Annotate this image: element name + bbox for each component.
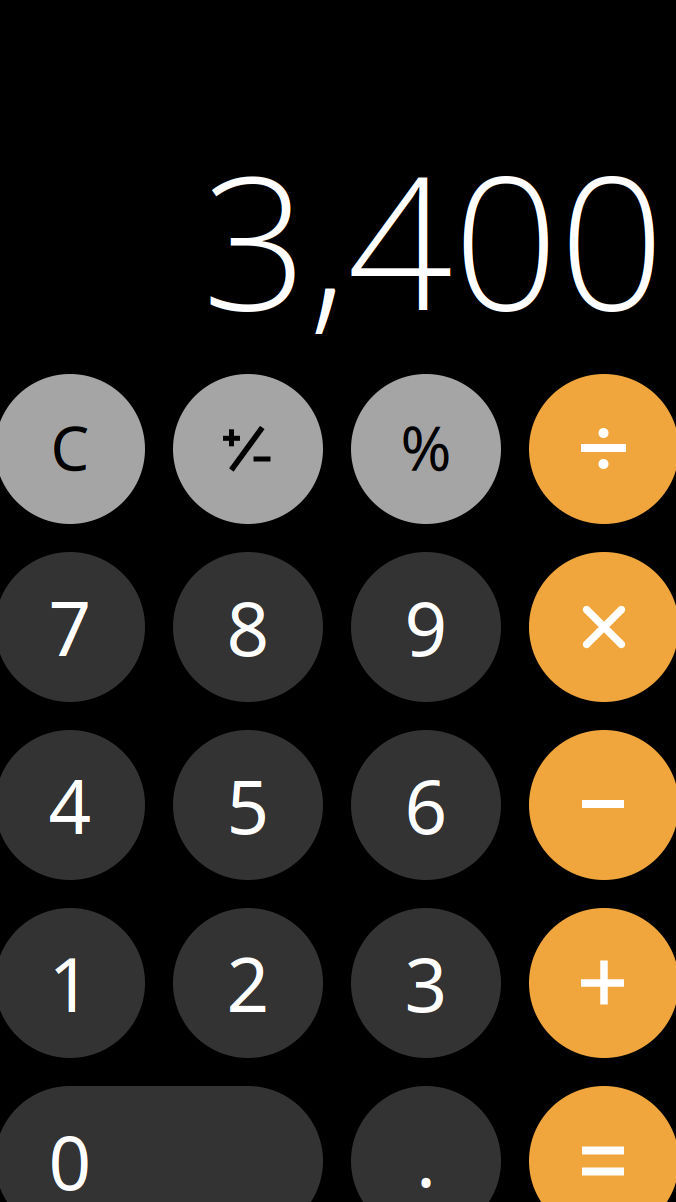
staticText: 3 [404,933,447,1033]
staticText: 1 [48,933,91,1033]
button[interactable]: 5 [173,730,323,880]
button[interactable]: 0 [0,1086,323,1202]
staticText: 6 [404,755,447,855]
staticText: 5 [226,755,269,855]
button[interactable]: 9 [351,552,501,702]
button[interactable]: Equals [529,1086,676,1202]
button[interactable]: % [351,374,501,524]
staticText: 4 [48,755,91,855]
button[interactable]: Divide [529,374,676,524]
staticText: 7 [48,577,91,677]
staticText: C [50,406,89,488]
button[interactable]: 6 [351,730,501,880]
button[interactable]: Subtract [529,730,676,880]
staticText: 3,400 [202,112,665,364]
staticText: % [400,406,451,488]
button[interactable]: 1 [0,908,145,1058]
button[interactable]: 8 [173,552,323,702]
button[interactable]: C [0,374,145,524]
button[interactable]: Toggle sign [173,374,323,524]
button[interactable]: . [351,1086,501,1202]
staticText: . [416,1108,436,1202]
staticText: 9 [404,577,447,677]
staticText: 8 [226,577,269,677]
button[interactable]: Add [529,908,676,1058]
button[interactable]: 7 [0,552,145,702]
button[interactable]: 3 [351,908,501,1058]
staticText: 2 [226,933,269,1033]
button[interactable]: 2 [173,908,323,1058]
button[interactable]: 4 [0,730,145,880]
staticText: 0 [48,1111,91,1202]
button[interactable]: Multiply [529,552,676,702]
